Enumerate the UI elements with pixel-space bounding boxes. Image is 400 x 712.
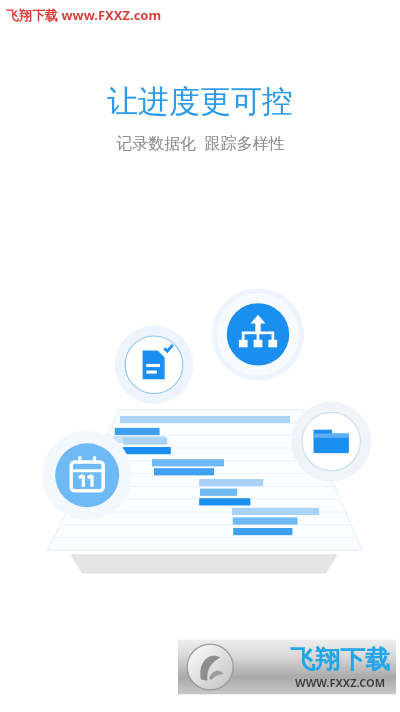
staticText: 飞翔下载: [290, 644, 390, 675]
staticText: 让进度更可控: [107, 82, 293, 121]
staticText: 记录数据化 跟踪多样性: [116, 132, 285, 154]
button[interactable]: FXXZ download site logo: [178, 636, 396, 698]
staticText: WWW.FXXZ.COM: [295, 675, 386, 690]
button[interactable]: 飞翔下载 www.FXXZ.com: [6, 6, 162, 24]
